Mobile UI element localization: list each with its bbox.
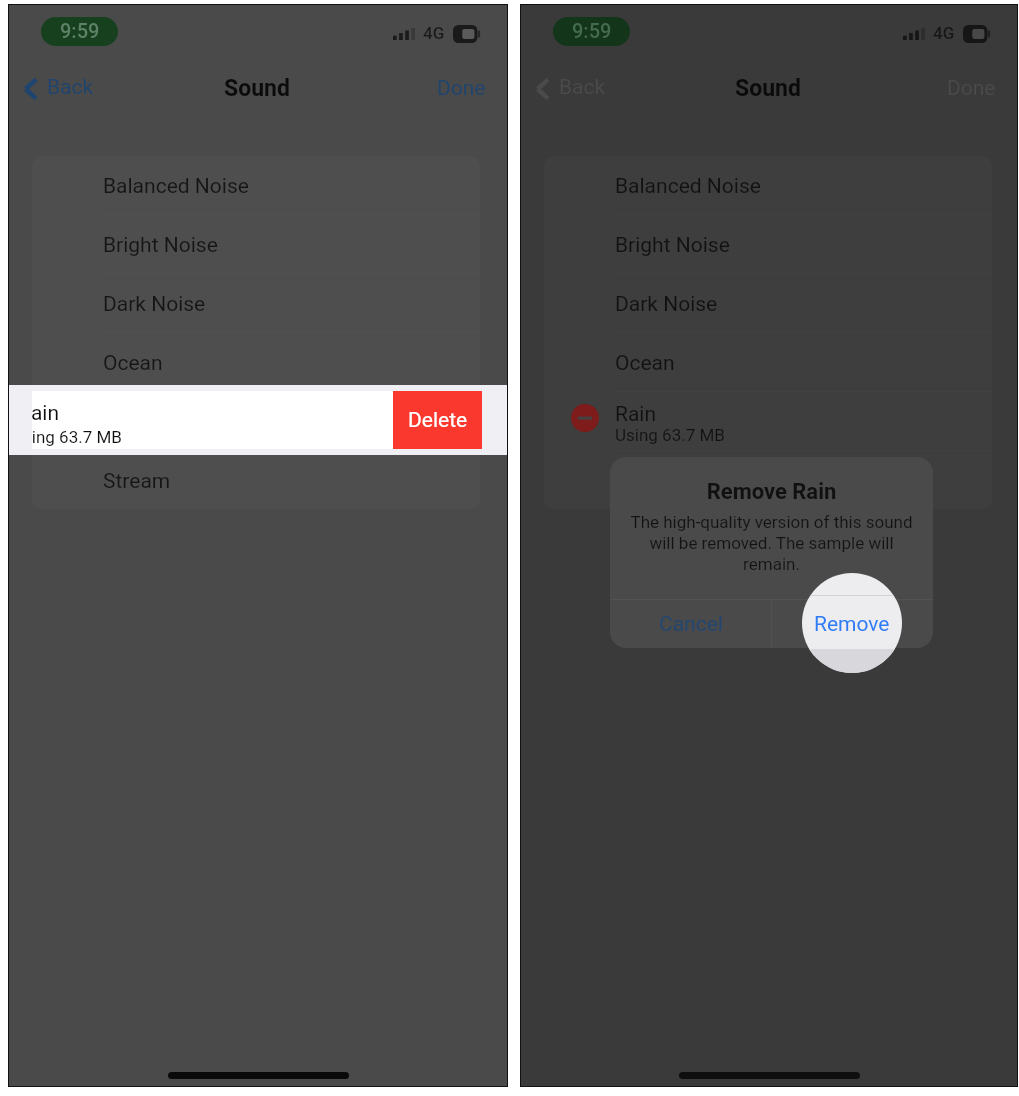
- staticText: Using 63.7 MB: [615, 425, 725, 445]
- staticText: Sound: [735, 75, 801, 102]
- staticText: Back: [47, 75, 94, 100]
- staticText: Rain: [32, 401, 60, 426]
- button[interactable]: Balanced Noise: [32, 156, 480, 214]
- button[interactable]: Done: [433, 70, 490, 107]
- staticText: Remove Rain: [610, 479, 933, 505]
- button[interactable]: Done: [943, 70, 1000, 107]
- staticText: Rain: [615, 402, 657, 427]
- button[interactable]: Ocean: [32, 333, 480, 391]
- button[interactable]: Rain: [32, 391, 393, 449]
- button[interactable]: Cancel: [610, 600, 771, 648]
- staticText: Back: [559, 75, 606, 100]
- other: Remove download: [571, 404, 599, 432]
- button[interactable]: Remove: [772, 600, 933, 648]
- button[interactable]: Bright Noise: [544, 215, 992, 273]
- button[interactable]: Ocean: [544, 333, 992, 391]
- staticText: Delete: [408, 408, 468, 433]
- staticText: Ocean: [615, 351, 675, 376]
- staticText: Sound: [224, 75, 290, 102]
- button[interactable]: Back: [20, 70, 98, 107]
- staticText: Cancel: [659, 612, 723, 637]
- button[interactable]: Remove: [802, 573, 902, 673]
- button[interactable]: Back: [532, 70, 610, 107]
- staticText: Bright Noise: [103, 233, 218, 258]
- staticText: Remove: [815, 612, 891, 637]
- staticText: 4G: [933, 23, 955, 43]
- staticText: 4G: [423, 23, 445, 43]
- staticText: Stream: [103, 469, 171, 494]
- staticText: Ocean: [103, 351, 163, 376]
- staticText: Balanced Noise: [615, 174, 761, 199]
- staticText: Bright Noise: [615, 233, 730, 258]
- staticText: Dark Noise: [103, 292, 206, 317]
- button[interactable]: Delete: [393, 391, 482, 449]
- staticText: Using 63.7 MB: [32, 427, 122, 447]
- button[interactable]: Stream: [544, 451, 992, 509]
- button[interactable]: Dark Noise: [32, 274, 480, 332]
- button[interactable]: Remove download: [544, 392, 992, 450]
- button[interactable]: Balanced Noise: [544, 156, 992, 214]
- button[interactable]: Dark Noise: [544, 274, 992, 332]
- button[interactable]: Bright Noise: [32, 215, 480, 273]
- staticText: 9:59: [60, 19, 100, 42]
- staticText: Dark Noise: [615, 292, 718, 317]
- staticText: Done: [947, 76, 996, 101]
- staticText: 9:59: [572, 19, 612, 42]
- staticText: Remove: [814, 612, 890, 637]
- staticText: The high-quality version of this sound w…: [610, 512, 933, 574]
- staticText: Balanced Noise: [103, 174, 249, 199]
- staticText: Done: [437, 76, 486, 101]
- button[interactable]: Stream: [32, 451, 480, 509]
